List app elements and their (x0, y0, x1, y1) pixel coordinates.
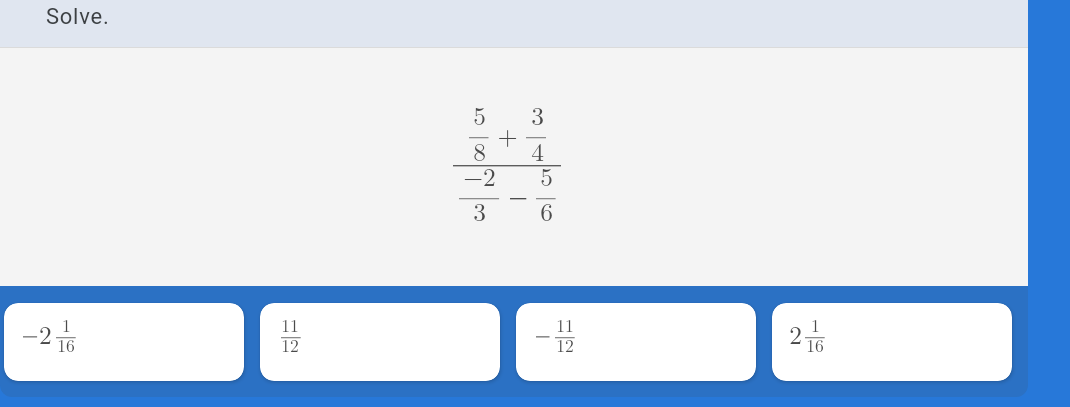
button[interactable]: two and one sixteenth (772, 303, 1012, 381)
staticText: 2 (39, 315, 52, 351)
staticText: 5 (473, 96, 486, 132)
staticText: 12 (556, 332, 574, 357)
staticText: 11 (281, 312, 299, 337)
staticText: 1 (811, 312, 820, 337)
staticText: −2 (463, 157, 496, 193)
button[interactable]: minus eleven twelfths (516, 303, 756, 381)
staticText: 8 (473, 132, 486, 168)
staticText: 16 (806, 332, 824, 357)
staticText: 4 (531, 132, 544, 168)
staticText: 11 (556, 312, 574, 337)
staticText: 3 (531, 96, 544, 132)
staticText: 16 (57, 332, 75, 357)
staticText: 5 (540, 157, 553, 193)
staticText: 2 (789, 315, 802, 351)
staticText: 12 (281, 332, 299, 357)
staticText: + (497, 116, 518, 153)
staticText: Solve. (46, 4, 110, 30)
staticText: 3 (473, 192, 486, 228)
button[interactable]: eleven twelfths (260, 303, 500, 381)
staticText: 6 (540, 192, 553, 228)
button[interactable]: minus two and one sixteenth (4, 303, 244, 381)
staticText: 1 (62, 312, 71, 337)
